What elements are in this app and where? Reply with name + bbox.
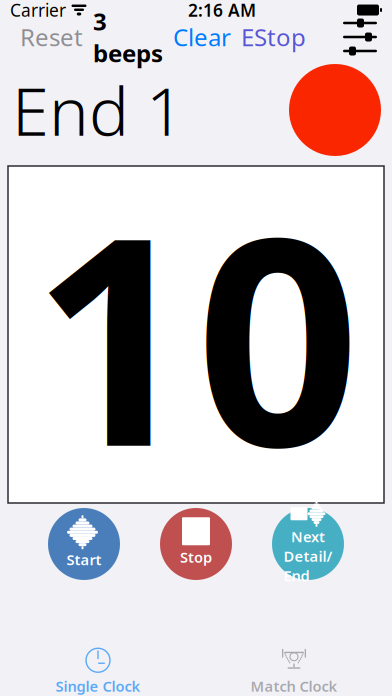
button[interactable]: Single Clock [0, 647, 196, 695]
staticText: 3 beeps [93, 5, 163, 69]
button[interactable]: Clear [173, 21, 231, 53]
staticText: End 1 [12, 66, 184, 154]
button[interactable]: Match Clock [196, 647, 392, 695]
button[interactable]: Next [272, 508, 344, 580]
button[interactable]: Start [48, 508, 120, 580]
staticText: Carrier [10, 0, 66, 21]
staticText: Stop [180, 547, 212, 567]
staticText: Match Clock [250, 676, 337, 696]
staticText: 10 [32, 144, 360, 525]
staticText: Reset [20, 21, 83, 53]
staticText: Next [291, 527, 325, 546]
button[interactable]: Settings [338, 20, 382, 54]
staticText: Clear [173, 21, 231, 53]
staticText: Detail/End [283, 546, 332, 585]
staticText: Start [66, 550, 101, 569]
button[interactable]: Stop [160, 508, 232, 580]
button[interactable]: EStop [241, 21, 306, 53]
button[interactable]: 3 beeps [93, 5, 163, 69]
button[interactable]: Reset [20, 21, 83, 53]
staticText: 2:16 AM [188, 0, 256, 21]
staticText: Single Clock [55, 676, 140, 696]
staticText: EStop [241, 21, 306, 53]
